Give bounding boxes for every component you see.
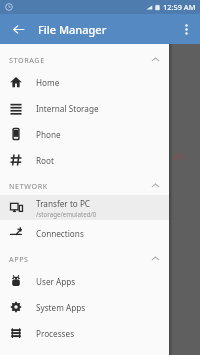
staticText: Transfer to PC [36,198,91,209]
button[interactable]: Back [7,18,29,40]
staticText: Phone [36,129,61,140]
button[interactable]: User Apps [0,268,169,294]
staticText: /storage/emulated/0 [36,210,97,218]
staticText: 12:59 AM [163,2,196,12]
staticText: User Apps [36,276,76,287]
staticText: File Manager [38,22,107,37]
staticText: Home [36,77,60,88]
button[interactable]: Root [0,147,169,173]
button[interactable]: Phone [0,121,169,147]
staticText: Processes [36,328,75,339]
staticText: NETWORK [9,181,48,191]
button[interactable]: More options [175,18,197,40]
button[interactable]: Home [0,69,169,95]
staticText: System Apps [36,302,86,313]
staticText: APPS [9,254,29,264]
staticText: Root [36,155,54,166]
button[interactable]: System Apps [0,294,169,320]
button[interactable]: NETWORK [0,176,169,195]
staticText: Connections [36,228,84,239]
button[interactable]: Transfer to PC [0,195,169,220]
button[interactable]: Processes [0,320,169,346]
staticText: STORAGE [9,55,45,65]
staticText: Internal Storage [36,103,99,114]
button[interactable]: APPS [0,249,169,268]
button[interactable]: STORAGE [0,50,169,69]
staticText: iFi [174,150,184,162]
button[interactable]: Connections [0,220,169,246]
button[interactable]: Internal Storage [0,95,169,121]
